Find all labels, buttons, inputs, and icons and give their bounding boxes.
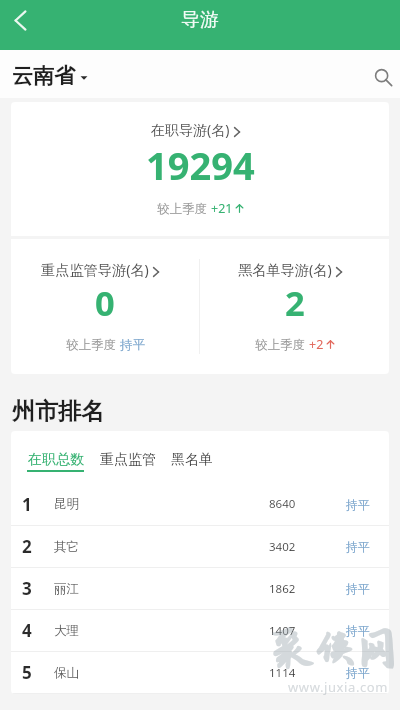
staticText: 持平 [346, 539, 370, 554]
staticText: 持平 [346, 665, 370, 680]
staticText: 在职导游(名) [151, 120, 230, 139]
staticText: 0 [95, 279, 115, 326]
staticText: 4 [22, 619, 32, 642]
staticText: 持平 [120, 337, 145, 353]
staticText: 1114 [269, 665, 296, 681]
staticText: 聚侠网 [271, 627, 398, 674]
staticText: 5 [22, 661, 32, 684]
button[interactable]: 5 [11, 652, 389, 693]
staticText: 大理 [54, 623, 79, 639]
staticText: 3 [22, 577, 32, 600]
staticText: 2 [285, 279, 305, 326]
staticText: 持平 [346, 497, 370, 512]
staticText: 持平 [346, 581, 370, 596]
staticText: 州市排名 [12, 397, 104, 426]
staticText: 导游 [181, 8, 219, 32]
button[interactable]: 3 [11, 568, 389, 609]
button[interactable]: Search [366, 57, 400, 91]
staticText: 3402 [269, 539, 296, 555]
staticText: 昆明 [54, 496, 79, 512]
staticText: 1862 [269, 581, 296, 597]
button[interactable]: 在职导游(名) [11, 102, 389, 236]
staticText: 较上季度 [157, 200, 211, 217]
staticText: 1 [22, 493, 32, 516]
staticText: 黑名单 [171, 451, 213, 469]
staticText: 重点监管 [100, 451, 156, 469]
staticText: 持平 [346, 623, 370, 638]
staticText: 其它 [54, 539, 79, 555]
staticText: 丽江 [54, 581, 79, 597]
button[interactable]: 重点监管导游(名) [11, 239, 199, 374]
button[interactable]: 重点监管 [100, 431, 156, 470]
staticText: +2 [309, 336, 324, 353]
staticText: 较上季度 [66, 336, 120, 353]
staticText: 在职总数 [28, 451, 84, 469]
staticText: +21 [211, 200, 233, 217]
staticText: 保山 [54, 665, 79, 681]
staticText: 云南省 [12, 63, 75, 89]
button[interactable]: 云南省 [12, 63, 88, 89]
staticText: 1407 [269, 623, 296, 639]
staticText: 19294 [146, 139, 255, 191]
button[interactable]: 2 [11, 526, 389, 567]
button[interactable]: 黑名单导游(名) [200, 239, 389, 374]
staticText: 黑名单导游(名) [238, 260, 332, 279]
button[interactable]: 黑名单 [171, 431, 213, 470]
staticText: 8640 [269, 496, 296, 512]
button[interactable]: 1 [11, 483, 389, 525]
button[interactable]: 在职总数 [27, 431, 84, 472]
staticText: 较上季度 [255, 336, 309, 353]
button[interactable]: Back [0, 0, 40, 40]
staticText: www.juxia.com [288, 678, 389, 696]
staticText: 2 [22, 535, 32, 558]
button[interactable]: 4 [11, 610, 389, 651]
staticText: 重点监管导游(名) [41, 260, 149, 279]
